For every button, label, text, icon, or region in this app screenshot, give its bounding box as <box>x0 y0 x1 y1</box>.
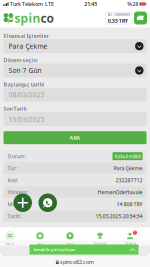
button[interactable]: Para Çekme <box>3 39 146 53</box>
staticText: 15/03/2025 <box>8 115 44 123</box>
staticText: Dönem seçin: <box>3 57 37 64</box>
staticText: 0.33 TRY <box>108 17 128 24</box>
staticText: co <box>41 10 55 26</box>
button[interactable]: Son 7 Gün <box>3 63 146 77</box>
staticText: ARA <box>69 134 80 141</box>
staticText: Para Çekme <box>113 165 142 172</box>
button[interactable]: Casino <box>55 228 85 247</box>
staticText: Yöntem: <box>7 189 27 196</box>
staticText: İsmail ile görüşülüyor <box>33 247 75 252</box>
staticText: 21:45 <box>84 0 97 8</box>
staticText: Bonuslar <box>94 242 106 245</box>
button[interactable]: Hesabım <box>115 228 145 247</box>
staticText: 15.03.2025 20:34:34 <box>95 213 142 220</box>
staticText: Menü <box>6 242 14 245</box>
button[interactable]: Menü <box>0 228 25 247</box>
staticText: Finansal İşlemler <box>3 32 48 39</box>
staticText: Başlangıç tarihi <box>3 81 44 88</box>
staticText: 14 808 TRY <box>116 201 142 208</box>
staticText: Tarih: <box>7 213 20 220</box>
button[interactable]: Bonuslar <box>85 228 115 247</box>
staticText: Kabul edildi <box>114 153 140 160</box>
staticText: HemenOdeHavale <box>97 189 142 196</box>
staticText: Spor <box>37 242 43 245</box>
staticText: Kod: <box>7 177 17 184</box>
button[interactable]: WhatsApp <box>38 193 57 212</box>
button[interactable]: İsmail ile görüşülüyor <box>29 244 138 254</box>
staticText: spinco82.com <box>60 258 94 266</box>
staticText: Son 7 Gün <box>8 66 41 75</box>
staticText: spin <box>15 10 41 26</box>
staticText: Casino <box>65 242 74 245</box>
button[interactable]: ARA <box>3 131 146 144</box>
staticText: Turk Telekom LTE <box>9 0 54 8</box>
staticText: Tür: <box>7 165 16 172</box>
button[interactable]: Yeni işlem <box>13 193 32 212</box>
button[interactable]: Spor <box>25 228 55 247</box>
staticText: 232287712 <box>115 177 142 184</box>
staticText: ID: 10056099 <box>108 12 130 17</box>
staticText: 1 <box>134 231 136 234</box>
button[interactable]: ID: 10056099 <box>106 12 132 24</box>
staticText: Durum: <box>7 153 25 160</box>
staticText: Miktar: <box>7 201 24 208</box>
staticText: 08/03/2025 <box>8 90 44 99</box>
button[interactable]: 08/03/2025 <box>3 88 146 102</box>
staticText: Hesabım <box>124 242 135 245</box>
button[interactable]: 15/03/2025 <box>3 112 146 126</box>
button[interactable]: Para Yatır <box>134 11 147 24</box>
staticText: Son Tarih <box>3 105 26 112</box>
staticText: %28 <box>127 0 139 8</box>
staticText: Para Çekme <box>8 42 47 51</box>
